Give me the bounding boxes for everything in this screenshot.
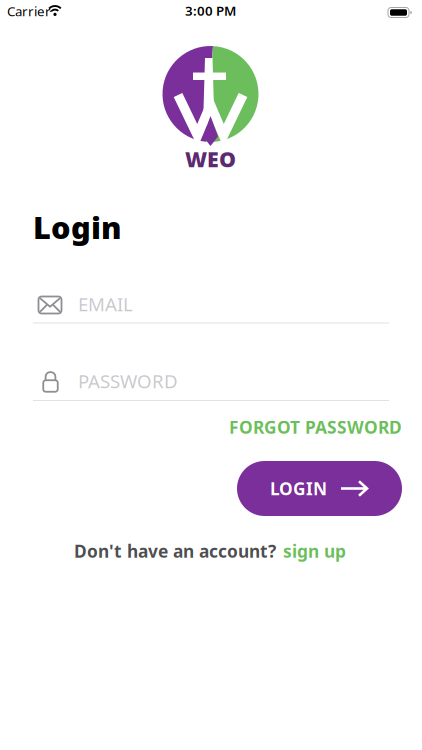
button[interactable]: sign up	[283, 539, 346, 562]
staticText: Don't have an account?	[74, 539, 276, 562]
staticText: LOGIN	[270, 477, 327, 500]
staticText: FORGOT PASSWORD	[229, 415, 402, 438]
staticText: EMAIL	[78, 292, 133, 316]
staticText: PASSWORD	[78, 369, 178, 393]
staticText: Login	[33, 207, 122, 247]
staticText: Carrier	[7, 2, 51, 20]
staticText: sign up	[283, 539, 346, 562]
staticText: WEO	[185, 145, 236, 173]
staticText: 3:00 PM	[185, 2, 236, 19]
button[interactable]: LOGIN	[237, 461, 402, 516]
button[interactable]: FORGOT PASSWORD	[229, 415, 402, 438]
